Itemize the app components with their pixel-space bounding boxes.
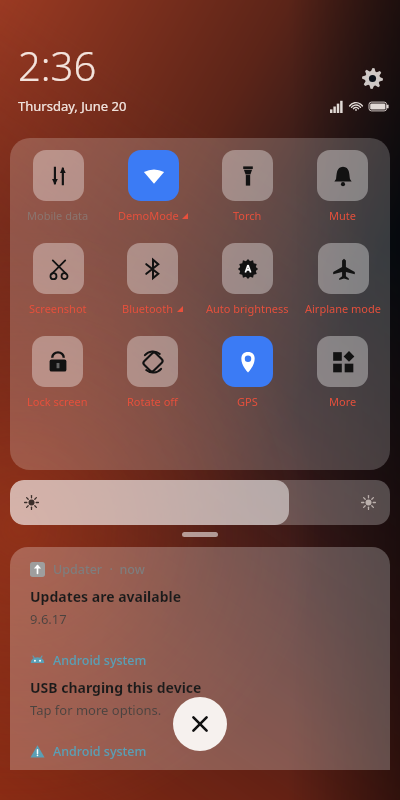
button[interactable]: Airplane mode — [305, 243, 381, 316]
staticText: Screenshot — [29, 301, 87, 316]
staticText: · now — [103, 561, 145, 578]
staticText: Torch — [233, 208, 262, 223]
button[interactable]: Android system — [10, 729, 390, 770]
staticText: Thursday, June 20 — [18, 97, 127, 115]
staticText: 2:36 — [18, 38, 97, 92]
staticText: Updates are available — [30, 587, 182, 606]
staticText: Mute — [329, 208, 356, 223]
staticText: Auto brightness — [206, 301, 289, 316]
staticText: Mobile data — [27, 208, 89, 223]
staticText: Lock screen — [27, 394, 88, 409]
staticText: More — [329, 394, 357, 409]
button[interactable]: More — [317, 336, 368, 409]
staticText: GPS — [237, 394, 258, 409]
staticText: Android system — [53, 743, 147, 760]
button[interactable]: DemoMode — [118, 150, 188, 223]
staticText: Tap for more options. — [30, 701, 162, 719]
staticText: Airplane mode — [305, 301, 381, 316]
button[interactable]: Auto brightness — [206, 243, 289, 316]
button[interactable]: Bluetooth — [122, 243, 183, 316]
button[interactable]: Lock screen — [27, 336, 88, 409]
button[interactable]: Mobile data — [27, 150, 89, 223]
button[interactable]: Torch — [222, 150, 273, 223]
button[interactable]: Brightness — [10, 480, 390, 525]
button[interactable]: Mute — [317, 150, 368, 223]
staticText: 9.6.17 — [30, 610, 67, 628]
button[interactable]: Settings — [356, 62, 388, 94]
staticText: Android system — [53, 652, 147, 669]
button[interactable]: Rotate off — [127, 336, 178, 409]
staticText: Bluetooth — [122, 301, 174, 316]
button[interactable]: GPS — [222, 336, 273, 409]
staticText: DemoMode — [118, 208, 179, 223]
staticText: Updater — [53, 561, 103, 578]
button[interactable]: Screenshot — [29, 243, 87, 316]
button[interactable]: Clear all notifications — [173, 697, 227, 751]
button[interactable]: Android system — [10, 638, 390, 729]
staticText: USB charging this device — [30, 678, 202, 697]
button[interactable]: Updater — [10, 547, 390, 638]
staticText: Rotate off — [127, 394, 178, 409]
